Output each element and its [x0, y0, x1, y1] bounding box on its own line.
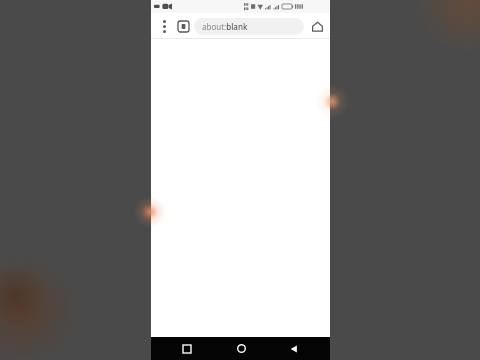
button[interactable]: Back [277, 337, 311, 360]
button[interactable]: about:blank [194, 18, 304, 35]
staticText: about:blank [202, 21, 248, 32]
button[interactable]: Tabs [173, 14, 193, 38]
button[interactable]: Home [307, 14, 327, 38]
button[interactable]: More options [155, 14, 173, 38]
button[interactable]: Home [224, 337, 258, 360]
button[interactable]: Recent apps [170, 337, 204, 360]
